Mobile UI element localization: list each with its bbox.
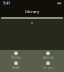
staticText: Library xyxy=(25,9,39,14)
staticText: For You xyxy=(43,66,53,69)
button[interactable]: For You xyxy=(32,61,64,69)
staticText: Albums xyxy=(43,56,53,59)
staticText: 9:41 xyxy=(3,0,10,6)
button[interactable]: Photos xyxy=(0,52,32,59)
button[interactable]: Search xyxy=(0,61,32,69)
staticText: Search xyxy=(12,66,20,69)
staticText: Photos xyxy=(11,56,21,59)
staticText: ●● xyxy=(57,1,61,4)
button[interactable]: Albums xyxy=(32,52,64,59)
